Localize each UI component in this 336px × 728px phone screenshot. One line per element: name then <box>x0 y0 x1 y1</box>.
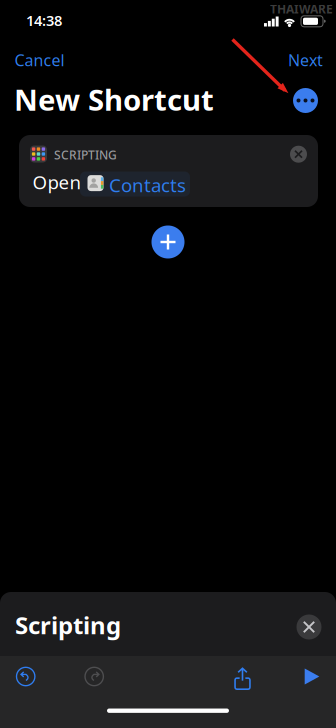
staticText: SCRIPTING <box>54 147 117 163</box>
button[interactable]: Next <box>275 45 323 75</box>
button[interactable]: Cancel <box>14 45 78 75</box>
staticText: Open <box>32 169 81 194</box>
button[interactable]: Close <box>292 610 325 643</box>
staticText: THAIWARE <box>270 1 333 17</box>
button[interactable]: Remove action <box>286 142 310 166</box>
staticText: Scripting <box>15 609 121 641</box>
button[interactable]: Undo <box>4 656 48 696</box>
button[interactable]: Run <box>290 656 334 696</box>
staticText: New Shortcut <box>14 80 214 119</box>
staticText: 14:38 <box>26 10 62 30</box>
button[interactable]: Add action <box>148 222 188 262</box>
button[interactable]: More options <box>289 84 322 117</box>
staticText: Cancel <box>14 49 64 71</box>
button[interactable]: Redo <box>72 656 116 696</box>
staticText: Next <box>288 49 323 71</box>
staticText: Contacts <box>109 172 186 197</box>
button[interactable]: Share <box>220 656 264 696</box>
